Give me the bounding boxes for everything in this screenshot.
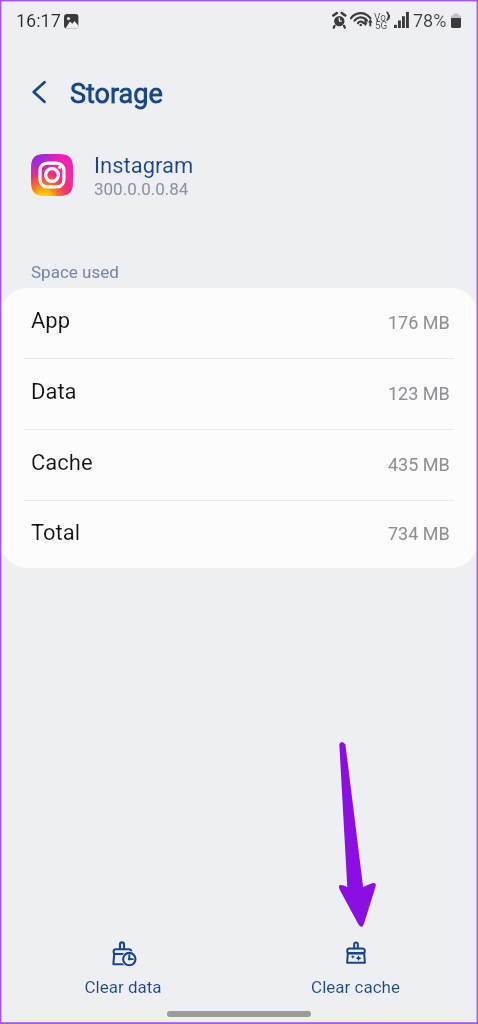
staticText: 176 MB (388, 312, 450, 333)
staticText: 78% (413, 10, 447, 31)
button[interactable]: Cache (0, 430, 478, 500)
button[interactable]: Clear cache (239, 914, 478, 1024)
staticText: Cache (31, 450, 93, 476)
staticText: 734 MB (388, 523, 450, 544)
button[interactable]: Back (12, 66, 65, 119)
staticText: App (31, 308, 71, 334)
staticText: Clear data (84, 977, 162, 997)
staticText: Space used (31, 262, 119, 282)
staticText: Clear cache (311, 977, 400, 997)
button[interactable]: Total (0, 501, 478, 568)
staticText: Total (31, 520, 81, 546)
button[interactable]: Data (0, 359, 478, 429)
staticText: Data (31, 379, 77, 405)
button[interactable]: App (0, 288, 478, 358)
staticText: Vo (374, 12, 386, 24)
staticText: 123 MB (388, 383, 450, 404)
staticText: 435 MB (388, 454, 450, 475)
staticText: Instagram (94, 153, 194, 179)
button[interactable]: Clear data (0, 914, 239, 1024)
staticText: 300.0.0.0.84 (94, 179, 189, 199)
staticText: 16:17 (16, 10, 61, 31)
staticText: 5G (375, 20, 388, 32)
staticText: Storage (70, 78, 163, 110)
